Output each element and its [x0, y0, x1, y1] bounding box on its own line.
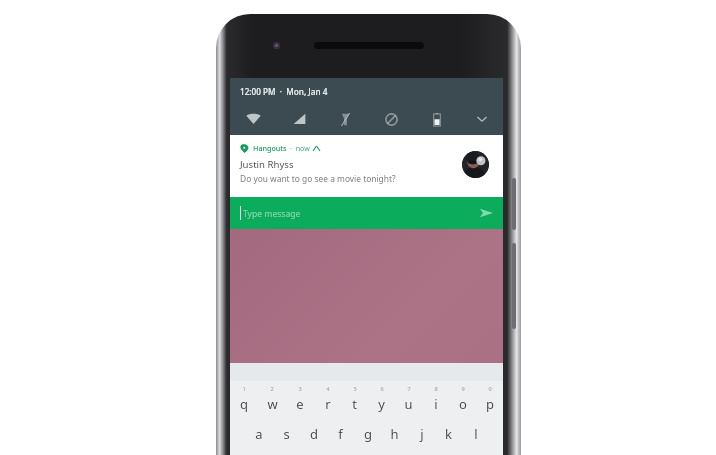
button[interactable]: o — [449, 393, 476, 415]
button[interactable]: h — [381, 423, 408, 445]
staticText: 8 — [434, 385, 438, 393]
staticText: r — [325, 395, 331, 413]
staticText: 4 — [326, 385, 330, 393]
staticText: t — [352, 395, 357, 413]
staticText: Type message — [243, 208, 301, 220]
staticText: g — [364, 425, 372, 443]
button[interactable]: k — [435, 423, 462, 445]
staticText: q — [240, 395, 248, 413]
staticText: i — [434, 395, 438, 413]
button[interactable]: d — [300, 423, 327, 445]
staticText: 9 — [461, 385, 465, 393]
button[interactable]: j — [408, 423, 435, 445]
staticText: s — [283, 425, 290, 443]
staticText: l — [474, 425, 478, 443]
button[interactable]: Do not disturb — [368, 106, 414, 132]
button[interactable]: i — [422, 393, 449, 415]
button[interactable]: r — [314, 393, 341, 415]
staticText: 6 — [380, 385, 384, 393]
staticText: Hangouts — [253, 143, 287, 153]
button[interactable]: Hangouts — [230, 135, 503, 197]
button[interactable]: Send — [477, 204, 495, 222]
staticText: 3 — [298, 385, 302, 393]
staticText: f — [338, 425, 343, 443]
staticText: Do you want to go see a movie tonight? — [240, 173, 396, 184]
button[interactable]: e — [286, 393, 314, 415]
staticText: k — [445, 425, 452, 443]
staticText: a — [255, 425, 263, 443]
button[interactable]: g — [354, 423, 381, 445]
staticText: 12:00 PM · Mon, Jan 4 — [240, 86, 328, 97]
staticText: Justin Rhyss — [240, 158, 294, 171]
staticText: 1 — [242, 385, 246, 393]
button[interactable]: Battery — [414, 106, 460, 132]
button[interactable]: y — [368, 393, 395, 415]
staticText: d — [310, 425, 318, 443]
button[interactable]: p — [476, 393, 503, 415]
button[interactable]: Expand quick settings — [460, 106, 503, 132]
staticText: h — [390, 425, 399, 443]
button[interactable]: Mobile signal — [276, 106, 322, 132]
staticText: w — [267, 395, 278, 413]
button[interactable]: q — [230, 393, 258, 415]
button[interactable]: a — [245, 423, 273, 445]
staticText: · now — [290, 143, 310, 153]
button[interactable]: Flashlight — [322, 106, 368, 132]
staticText: e — [296, 395, 304, 413]
button[interactable]: w — [258, 393, 286, 415]
staticText: o — [459, 395, 467, 413]
staticText: p — [486, 395, 494, 413]
staticText: 0 — [488, 385, 492, 393]
button[interactable]: u — [395, 393, 422, 415]
staticText: 5 — [353, 385, 357, 393]
button[interactable]: f — [327, 423, 354, 445]
staticText: u — [404, 395, 413, 413]
button[interactable]: Type message — [230, 197, 503, 229]
button[interactable]: Wi-Fi — [230, 106, 276, 132]
staticText: 7 — [407, 385, 411, 393]
button[interactable]: l — [462, 423, 489, 445]
staticText: 2 — [270, 385, 274, 393]
button[interactable]: s — [273, 423, 300, 445]
staticText: y — [378, 395, 385, 413]
button[interactable]: t — [341, 393, 368, 415]
staticText: j — [420, 425, 424, 443]
button[interactable]: Justin Rhyss avatar — [462, 151, 489, 178]
